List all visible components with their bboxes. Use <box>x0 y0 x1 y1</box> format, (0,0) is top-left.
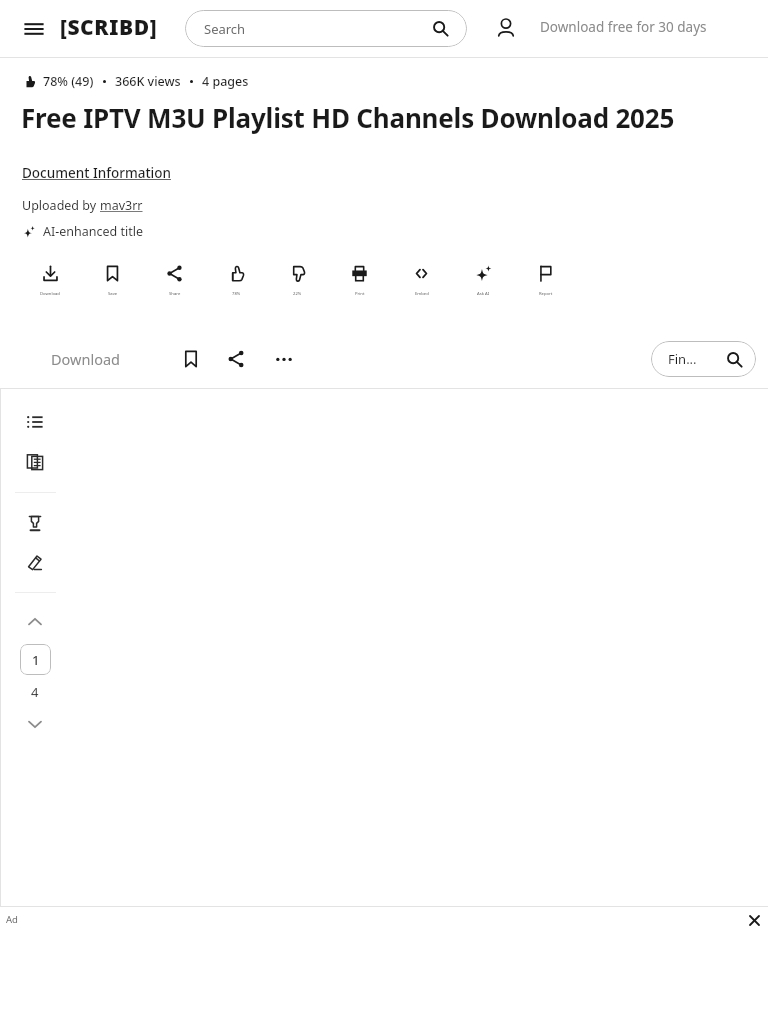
staticText: 366K views <box>115 73 181 90</box>
button[interactable]: Print <box>333 264 385 308</box>
staticText: Share <box>169 291 181 297</box>
button[interactable]: Table of contents <box>25 412 45 432</box>
staticText: 78% <box>232 291 241 297</box>
button[interactable]: Next page <box>25 714 45 734</box>
button[interactable]: Download free for 30 days <box>540 18 707 36</box>
button[interactable]: Like, 78 percent <box>210 264 262 308</box>
button[interactable]: mav3rr <box>100 197 143 214</box>
staticText: Report <box>539 291 553 297</box>
staticText: Ad <box>6 913 18 926</box>
button[interactable]: Save <box>181 349 201 369</box>
button[interactable]: Download <box>24 264 76 308</box>
staticText: Save <box>108 291 118 297</box>
staticText: 4 <box>31 683 39 701</box>
button[interactable]: Ask AI <box>457 264 509 308</box>
button[interactable]: Search <box>185 10 467 47</box>
staticText: AI-enhanced title <box>43 223 144 240</box>
button[interactable]: Fin... <box>651 341 756 377</box>
staticText: Uploaded by <box>22 197 100 214</box>
button[interactable]: 1 <box>20 644 51 675</box>
staticText: 22% <box>293 291 302 297</box>
button[interactable]: [SCRIBD] <box>60 13 158 43</box>
staticText: Print <box>355 291 365 297</box>
button[interactable]: Download <box>34 342 136 376</box>
button[interactable]: Share <box>226 349 246 369</box>
button[interactable]: Report <box>519 264 571 308</box>
staticText: 1 <box>32 651 40 669</box>
button[interactable]: Menu <box>22 17 46 41</box>
button[interactable]: Share <box>148 264 200 308</box>
button[interactable]: Embed <box>395 264 447 308</box>
button[interactable]: More options <box>273 348 295 370</box>
staticText: 78% (49) <box>43 73 94 90</box>
staticText: Embed <box>415 291 429 297</box>
button[interactable]: Highlight <box>25 513 45 533</box>
button[interactable]: Close ad <box>747 913 762 928</box>
staticText: mav3rr <box>100 197 143 214</box>
staticText: Search <box>204 20 246 38</box>
button[interactable]: Save <box>86 264 138 308</box>
staticText: Ask AI <box>477 291 490 297</box>
button[interactable]: Draw <box>25 552 45 572</box>
staticText: Download free for 30 days <box>540 18 707 36</box>
staticText: [SCRIBD] <box>60 13 158 42</box>
staticText: Download <box>40 291 60 297</box>
button[interactable]: Page thumbnails <box>25 452 45 472</box>
staticText: Free IPTV M3U Playlist HD Channels Downl… <box>21 100 675 135</box>
staticText: 4 pages <box>202 73 249 90</box>
button[interactable]: Document Information <box>22 164 171 182</box>
staticText: Fin... <box>668 350 697 368</box>
button[interactable]: Dislike, 22 percent <box>271 264 323 308</box>
button[interactable]: Account <box>495 17 517 39</box>
staticText: Download <box>51 349 120 369</box>
staticText: Document Information <box>22 164 171 182</box>
button[interactable]: Previous page <box>25 612 45 632</box>
